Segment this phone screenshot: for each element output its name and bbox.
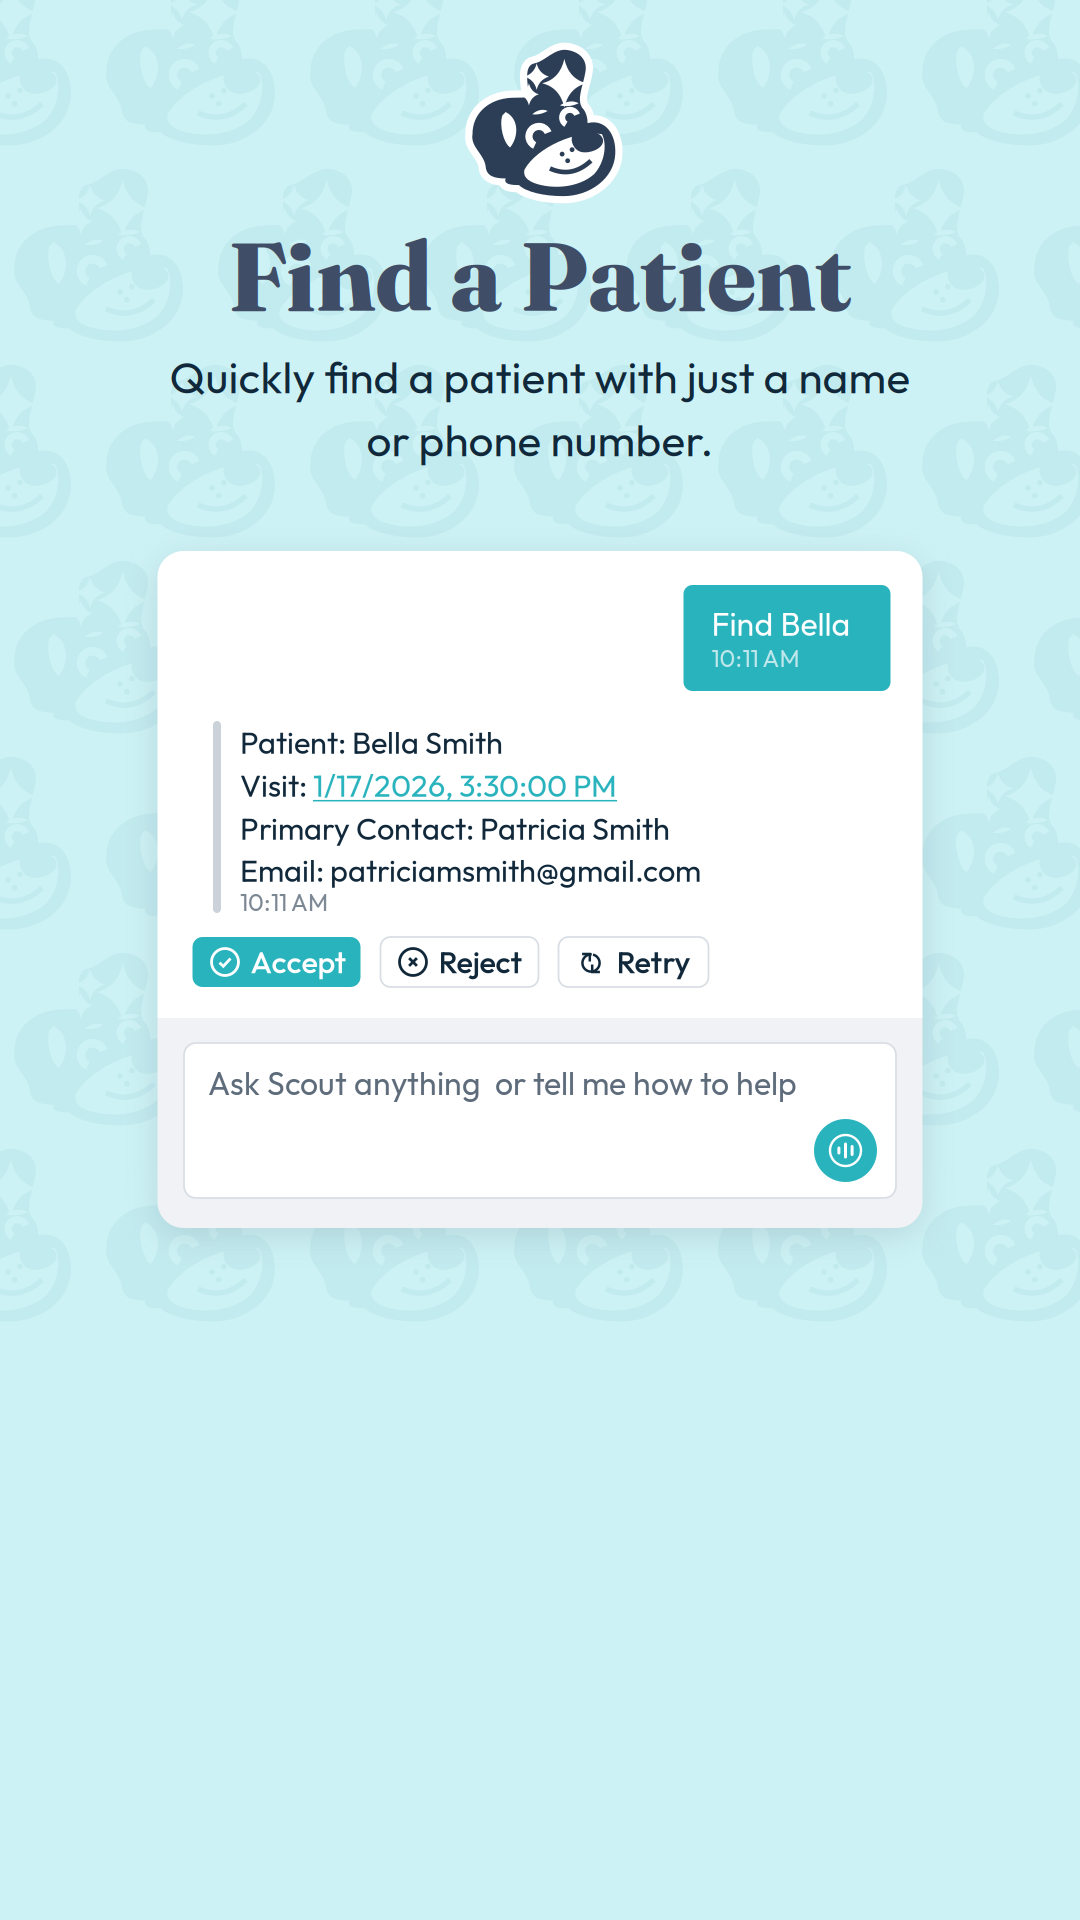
staticText: 1/17/2026, 3:30:00 PM xyxy=(313,766,617,805)
staticText: Reject xyxy=(438,943,522,981)
button[interactable]: Reject xyxy=(380,937,538,987)
staticText: 10:11 AM xyxy=(240,887,328,917)
button[interactable]: Accept xyxy=(192,937,360,987)
staticText: Accept xyxy=(250,943,346,981)
staticText: Email: patriciamsmith@gmail.com xyxy=(240,851,701,890)
staticText: Primary Contact: Patricia Smith xyxy=(240,809,670,848)
staticText: Retry xyxy=(616,943,690,981)
staticText: Patient: Bella Smith xyxy=(240,723,503,762)
staticText: Visit: xyxy=(240,766,313,805)
staticText: Find a Patient xyxy=(228,217,852,335)
staticText: Ask Scout anything or tell me how to hel… xyxy=(208,1063,797,1103)
staticText: 10:11 AM xyxy=(711,643,799,673)
staticText: Find Bella xyxy=(711,604,850,644)
staticText: or phone number. xyxy=(366,412,713,468)
staticText: Quickly find a patient with just a name xyxy=(169,349,910,405)
button[interactable]: Retry xyxy=(558,937,708,987)
button[interactable]: Voice input xyxy=(814,1119,877,1182)
